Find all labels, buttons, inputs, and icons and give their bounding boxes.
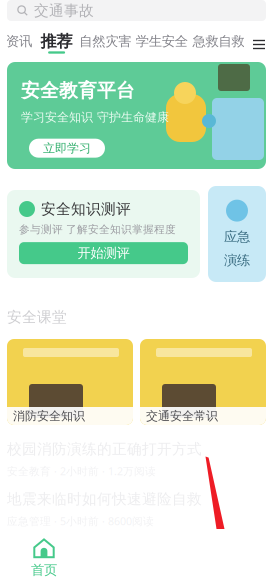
staticText: 首页 — [31, 562, 57, 578]
staticText: 急救自救 — [192, 33, 244, 49]
staticText: 消防安全知识 — [13, 409, 85, 423]
button[interactable]: 全部分类 — [252, 33, 266, 55]
staticText: 学习安全知识 守护生命健康 — [21, 110, 169, 125]
staticText: 交通事故 — [34, 1, 94, 19]
staticText: 应急 — [224, 229, 250, 245]
button[interactable]: 交通事故 — [7, 0, 266, 21]
staticText: 立即学习 — [43, 141, 91, 155]
staticText: 学生安全 — [136, 33, 188, 49]
staticText: 推荐 — [41, 31, 73, 51]
button[interactable]: 推荐 — [42, 33, 72, 55]
button[interactable]: 学生安全 — [139, 33, 185, 55]
button[interactable]: 安全教育平台 — [7, 62, 266, 169]
button[interactable]: 应急 — [208, 186, 266, 282]
button[interactable]: 资讯 — [7, 33, 31, 55]
staticText: 交通安全常识 — [146, 409, 218, 423]
staticText: 安全教育 · 2小时前 · 1.2万阅读 — [7, 464, 156, 478]
staticText: 自然灾害 — [79, 33, 131, 49]
staticText: 演练 — [224, 252, 250, 268]
staticText: 安全课堂 — [7, 308, 67, 326]
button[interactable]: 首页 — [11, 532, 77, 584]
staticText: 安全知识测评 — [41, 200, 131, 218]
button[interactable]: 安全知识测评 — [7, 190, 200, 278]
button[interactable]: 交通安全常识 — [140, 339, 266, 425]
button[interactable]: 校园消防演练的正确打开方式 — [7, 440, 266, 480]
button[interactable]: 自然灾害 — [82, 33, 128, 55]
button[interactable]: 急救自救 — [195, 33, 241, 55]
staticText: 地震来临时如何快速避险自救 — [7, 490, 202, 508]
button[interactable]: 消防安全知识 — [7, 339, 133, 425]
staticText: 开始测评 — [77, 245, 129, 261]
staticText: 安全教育平台 — [21, 79, 135, 102]
staticText: 应急管理 · 5小时前 · 8600阅读 — [7, 514, 154, 528]
staticText: 资讯 — [6, 33, 32, 49]
staticText: 校园消防演练的正确打开方式 — [7, 440, 202, 458]
staticText: 参与测评 了解安全知识掌握程度 — [19, 223, 176, 236]
button[interactable]: 地震来临时如何快速避险自救 — [7, 490, 266, 530]
